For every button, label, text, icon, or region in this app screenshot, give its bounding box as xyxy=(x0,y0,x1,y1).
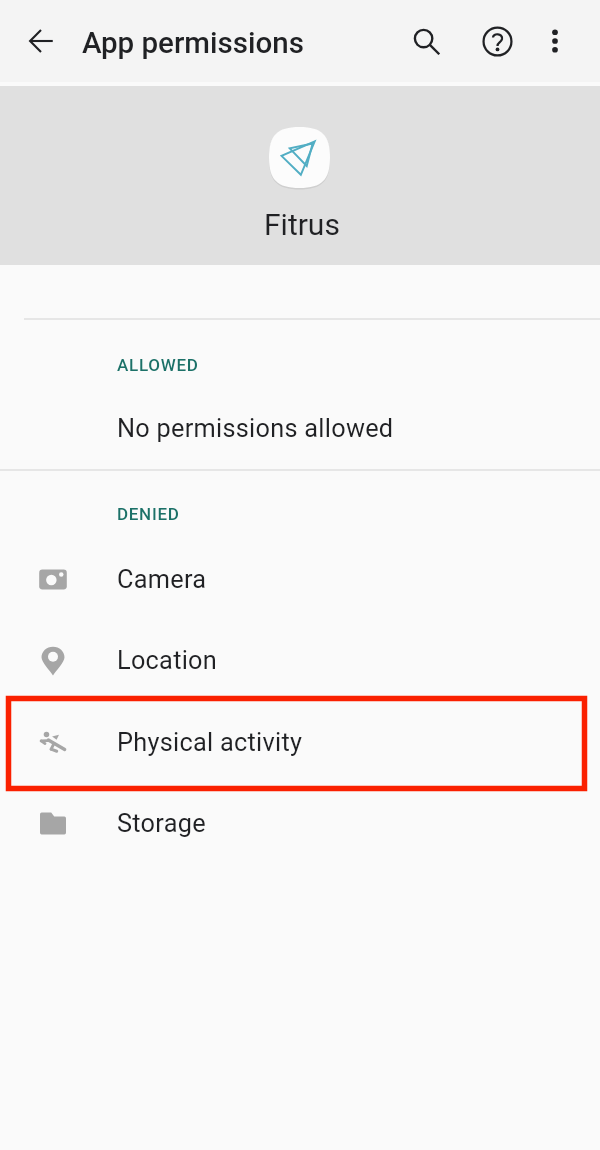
button[interactable]: Search xyxy=(398,13,454,69)
staticText: Storage xyxy=(117,809,206,839)
button[interactable]: Storage xyxy=(0,783,600,864)
staticText: Fitrus xyxy=(264,207,340,242)
button[interactable]: Location xyxy=(0,620,600,701)
button[interactable]: Camera xyxy=(0,539,600,620)
staticText: Physical activity xyxy=(117,728,303,758)
button[interactable]: Help xyxy=(469,13,525,69)
button[interactable]: Physical activity xyxy=(0,702,600,783)
staticText: Location xyxy=(117,646,218,676)
staticText: No permissions allowed xyxy=(117,414,394,444)
button[interactable]: More options xyxy=(527,13,583,69)
staticText: ALLOWED xyxy=(117,355,199,375)
button[interactable]: Back xyxy=(13,13,69,69)
staticText: App permissions xyxy=(82,26,305,61)
button[interactable]: No permissions allowed xyxy=(0,404,600,454)
staticText: Camera xyxy=(117,565,207,595)
staticText: DENIED xyxy=(117,504,180,524)
